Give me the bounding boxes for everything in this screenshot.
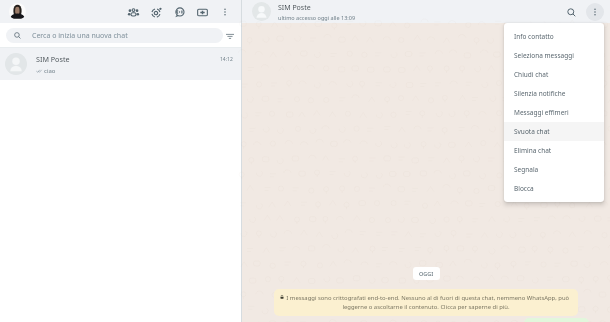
button[interactable]: New chat bbox=[192, 2, 212, 22]
staticText: Seleziona messaggi bbox=[514, 51, 574, 60]
button[interactable]: Cerca o inizia una nuova chat bbox=[6, 28, 223, 43]
staticText: ciao bbox=[44, 67, 56, 75]
staticText: Info contatto bbox=[514, 32, 554, 41]
staticText: SIM Poste bbox=[278, 3, 311, 13]
button[interactable]: Status bbox=[146, 2, 166, 22]
button[interactable]: Chiudi chat bbox=[504, 65, 604, 84]
button[interactable]: Filter bbox=[223, 29, 237, 43]
button[interactable]: SIM Poste bbox=[0, 48, 241, 80]
button[interactable]: Svuota chat bbox=[504, 122, 604, 141]
staticText: ultimo accesso oggi alle 13:09 bbox=[278, 14, 356, 21]
button[interactable]: Info contatto bbox=[504, 27, 604, 46]
staticText: Elimina chat bbox=[514, 146, 552, 155]
button[interactable]: Profile bbox=[9, 3, 26, 20]
staticText: Svuota chat bbox=[514, 127, 550, 136]
staticText: Cerca o inizia una nuova chat bbox=[32, 31, 128, 41]
button[interactable]: Blocca bbox=[504, 179, 604, 198]
staticText: 14:12 bbox=[220, 56, 233, 63]
staticText: Segnala bbox=[514, 165, 539, 174]
button[interactable]: Menu bbox=[215, 2, 235, 22]
button[interactable]: I messaggi sono crittografati end-to-end… bbox=[280, 294, 572, 311]
staticText: SIM Poste bbox=[36, 54, 70, 64]
button[interactable]: Seleziona messaggi bbox=[504, 46, 604, 65]
staticText: OGGI bbox=[419, 270, 434, 277]
staticText: I messaggi sono crittografati end-to-end… bbox=[280, 294, 572, 311]
staticText: Chiudi chat bbox=[514, 70, 549, 79]
staticText: Silenzia notifiche bbox=[514, 89, 566, 98]
staticText: Blocca bbox=[514, 184, 534, 193]
button[interactable]: Elimina chat bbox=[504, 141, 604, 160]
button[interactable]: Segnala bbox=[504, 160, 604, 179]
staticText: Messaggi effimeri bbox=[514, 108, 569, 117]
button[interactable]: Search bbox=[562, 3, 580, 21]
button[interactable]: Communities bbox=[123, 2, 143, 22]
button[interactable]: Menu bbox=[586, 3, 604, 21]
button[interactable]: Silenzia notifiche bbox=[504, 84, 604, 103]
button[interactable]: Messaggi effimeri bbox=[504, 103, 604, 122]
button[interactable]: Channels bbox=[169, 2, 189, 22]
